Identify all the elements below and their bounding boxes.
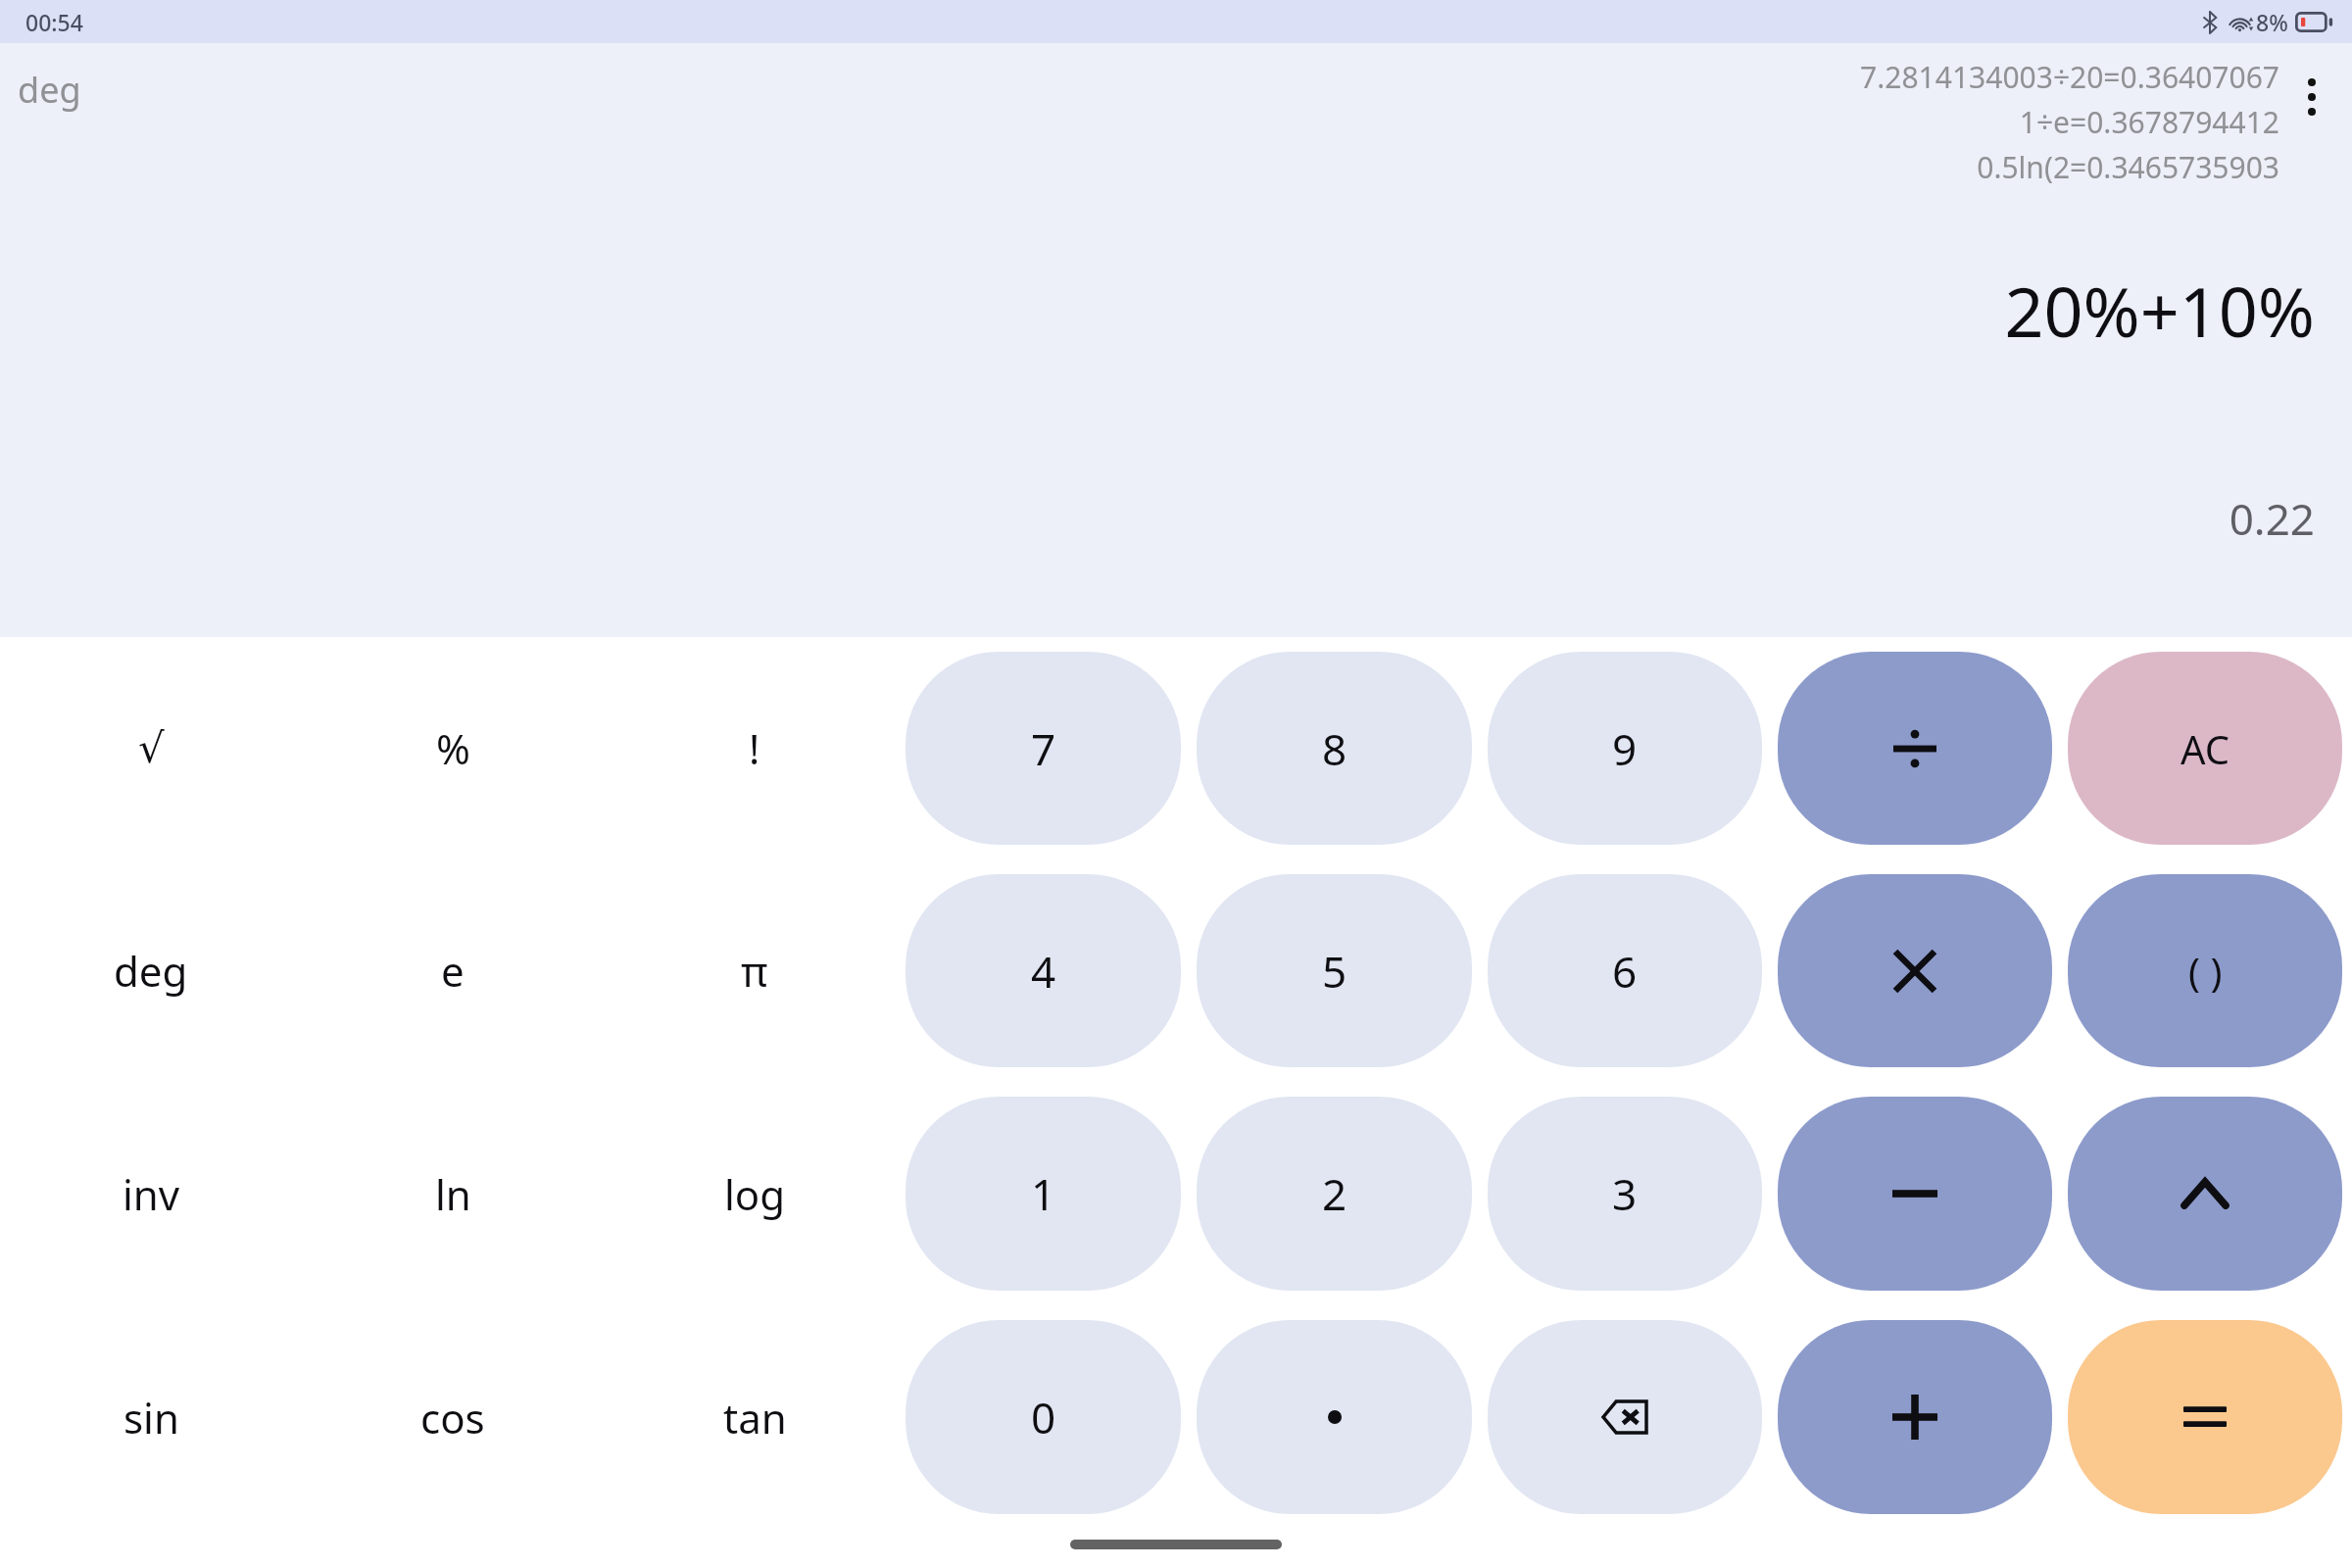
button[interactable]: 8 — [1197, 652, 1472, 845]
staticText: 20%+10% — [2004, 264, 2315, 357]
staticText: 0 — [1031, 1388, 1056, 1446]
staticText: 7 — [1031, 719, 1056, 778]
staticText: cos — [420, 1390, 485, 1445]
button[interactable]: 3 — [1488, 1097, 1762, 1291]
button[interactable]: More options — [2281, 61, 2342, 133]
staticText: 8 — [1322, 719, 1347, 778]
button[interactable]: 1÷e=0.3678794412 — [2019, 102, 2279, 142]
button[interactable]: √ — [0, 637, 302, 859]
button[interactable]: cos — [302, 1305, 604, 1529]
staticText: 8% — [2256, 7, 2288, 37]
staticText: ( ) — [2188, 945, 2223, 998]
staticText: log — [724, 1166, 786, 1222]
button[interactable]: ! — [604, 637, 906, 859]
button[interactable]: tan — [604, 1305, 906, 1529]
button[interactable]: 7 — [906, 652, 1181, 845]
staticText: 3 — [1612, 1164, 1638, 1223]
button[interactable]: inv — [0, 1082, 302, 1305]
button[interactable] — [1778, 874, 2052, 1067]
button[interactable]: ( ) — [2068, 874, 2342, 1067]
button[interactable]: 5 — [1197, 874, 1472, 1067]
button[interactable]: π — [604, 859, 906, 1082]
staticText: π — [741, 943, 768, 999]
staticText: 2 — [1322, 1164, 1347, 1223]
staticText: 5 — [1322, 942, 1347, 1001]
button[interactable]: Backspace — [1488, 1320, 1762, 1514]
button[interactable]: % — [302, 637, 604, 859]
button[interactable]: 7.2814134003÷20=0.36407067 — [1860, 57, 2279, 97]
staticText: 0.22 — [2229, 489, 2315, 548]
button[interactable] — [1778, 1097, 2052, 1291]
button[interactable]: ln — [302, 1082, 604, 1305]
staticText: e — [441, 943, 465, 999]
staticText: 4 — [1031, 942, 1056, 1001]
staticText: AC — [2180, 722, 2230, 775]
button[interactable]: AC — [2068, 652, 2342, 845]
staticText: sin — [123, 1390, 179, 1445]
staticText: ln — [435, 1166, 471, 1222]
button[interactable]: e — [302, 859, 604, 1082]
staticText: deg — [18, 66, 81, 114]
staticText: 1 — [1031, 1164, 1056, 1223]
button[interactable]: 9 — [1488, 652, 1762, 845]
staticText: inv — [122, 1166, 180, 1222]
staticText: % — [436, 720, 470, 776]
button[interactable]: 6 — [1488, 874, 1762, 1067]
button[interactable] — [1197, 1320, 1472, 1514]
staticText: 00:54 — [25, 7, 83, 37]
staticText: tan — [723, 1390, 787, 1445]
button[interactable]: 0 — [906, 1320, 1181, 1514]
button[interactable]: 0.5ln(2=0.3465735903 — [1977, 147, 2279, 187]
button[interactable]: 4 — [906, 874, 1181, 1067]
button[interactable] — [2068, 1320, 2342, 1514]
button[interactable]: deg — [0, 859, 302, 1082]
staticText: 9 — [1612, 719, 1638, 778]
staticText: 6 — [1612, 942, 1638, 1001]
staticText: √ — [138, 724, 165, 772]
staticText: ! — [749, 720, 760, 776]
button[interactable] — [1778, 1320, 2052, 1514]
button[interactable] — [2068, 1097, 2342, 1291]
button[interactable]: 2 — [1197, 1097, 1472, 1291]
button[interactable]: 1 — [906, 1097, 1181, 1291]
staticText: deg — [114, 943, 188, 999]
button[interactable]: log — [604, 1082, 906, 1305]
button[interactable] — [1778, 652, 2052, 845]
button[interactable]: sin — [0, 1305, 302, 1529]
